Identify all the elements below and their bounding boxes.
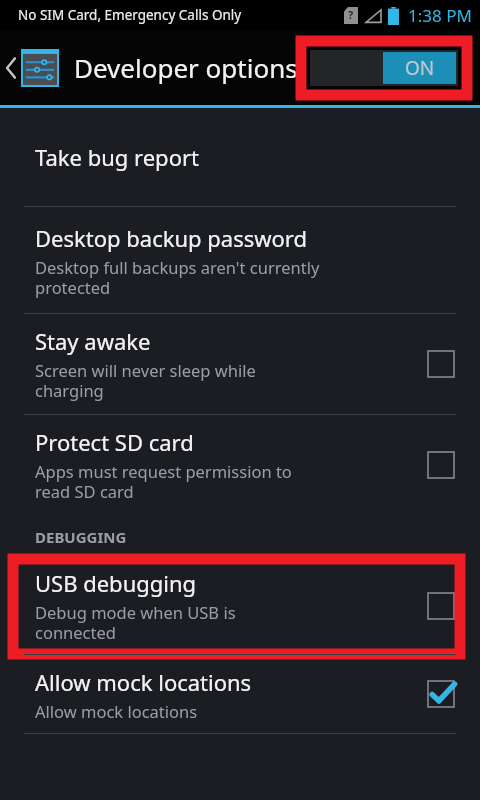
staticText: Developer options	[74, 50, 298, 85]
staticText: Screen will never sleep while charging	[35, 359, 256, 402]
button[interactable]: Protect SD card	[0, 415, 480, 515]
staticText: Allow mock locations	[35, 667, 252, 697]
staticText: Desktop full backups aren't currently pr…	[35, 256, 320, 299]
button[interactable]: Back	[0, 50, 62, 86]
staticText: No SIM Card, Emergency Calls Only	[18, 6, 242, 24]
button[interactable]: Developer options on	[310, 50, 458, 86]
staticText: Desktop backup password	[35, 223, 308, 253]
staticText: DEBUGGING	[35, 527, 127, 547]
staticText: Protect SD card	[35, 427, 194, 457]
staticText: 1:38 PM	[408, 4, 472, 27]
button[interactable]: Stay awake	[0, 314, 480, 414]
staticText: Debug mode when USB is connected	[35, 601, 236, 644]
staticText: ?	[348, 7, 354, 22]
button[interactable]: USB debugging	[0, 557, 480, 654]
staticText: Stay awake	[35, 326, 151, 356]
staticText: Take bug report	[35, 142, 199, 172]
button[interactable]: Allow mock locations	[0, 655, 480, 733]
button[interactable]: Take bug report	[0, 128, 480, 186]
button[interactable]: Desktop backup password	[0, 215, 480, 307]
staticText: USB debugging	[35, 568, 197, 598]
staticText: Apps must request permission to read SD …	[35, 460, 292, 503]
staticText: Allow mock locations	[35, 700, 198, 722]
staticText: ON	[405, 55, 435, 81]
